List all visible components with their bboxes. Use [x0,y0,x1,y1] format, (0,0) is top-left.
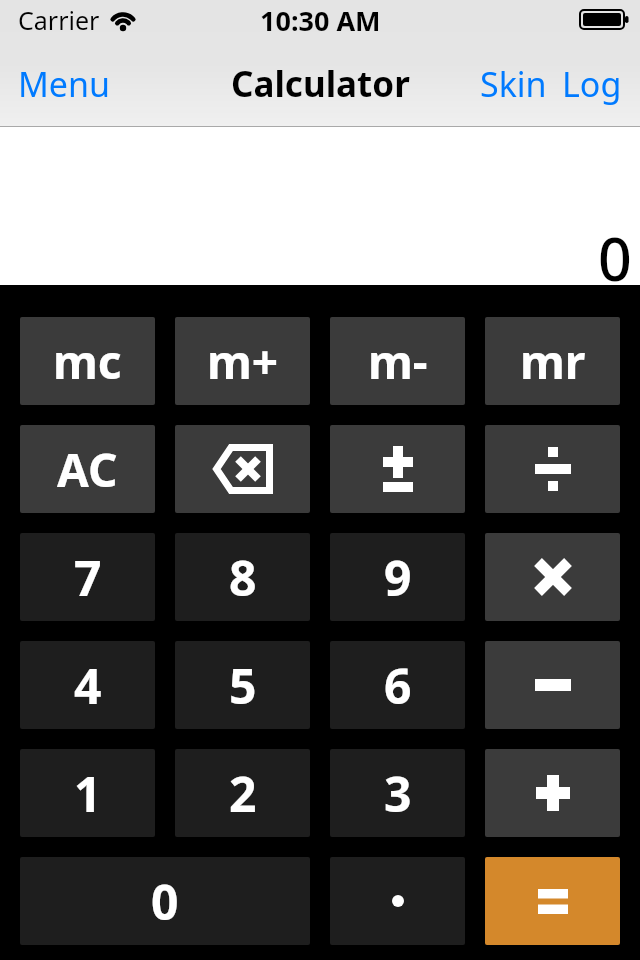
button[interactable] [175,425,310,513]
button[interactable]: 2 [175,749,310,837]
staticText: Calculator [231,60,410,108]
staticText: Carrier [18,3,100,37]
button[interactable]: 9 [330,533,465,621]
staticText: mr [520,330,586,393]
button[interactable]: Skin [480,61,547,107]
button[interactable]: m+ [175,317,310,405]
staticText: AC [57,438,118,501]
button[interactable]: Menu [18,61,111,107]
button[interactable]: 0 [20,857,310,945]
button[interactable] [485,641,620,729]
button[interactable]: AC [20,425,155,513]
button[interactable]: 4 [20,641,155,729]
staticText: 7 [74,545,102,610]
staticText: 4 [74,653,102,718]
button[interactable] [485,533,620,621]
staticText: Skin [480,61,547,107]
staticText: Menu [18,61,111,107]
staticText: 3 [384,761,412,826]
button[interactable] [485,425,620,513]
button[interactable] [330,425,465,513]
button[interactable]: Log [562,61,622,107]
button[interactable]: 8 [175,533,310,621]
staticText: 10:30 AM [260,2,381,39]
button[interactable]: 1 [20,749,155,837]
staticText: m- [368,330,428,393]
staticText: mc [53,330,122,393]
staticText: 2 [229,761,257,826]
button[interactable]: 3 [330,749,465,837]
staticText: m+ [207,330,279,393]
staticText: 9 [384,545,412,610]
staticText: 5 [229,653,257,718]
button[interactable] [330,857,465,945]
button[interactable]: mr [485,317,620,405]
button[interactable]: m- [330,317,465,405]
staticText: Log [562,61,622,107]
staticText: 8 [229,545,257,610]
button[interactable]: 5 [175,641,310,729]
button[interactable] [485,749,620,837]
staticText: 0 [598,218,632,298]
button[interactable]: 6 [330,641,465,729]
staticText: 1 [74,761,102,826]
button[interactable]: mc [20,317,155,405]
button[interactable] [485,857,620,945]
staticText: 6 [384,653,412,718]
button[interactable]: 7 [20,533,155,621]
staticText: 0 [151,869,179,934]
